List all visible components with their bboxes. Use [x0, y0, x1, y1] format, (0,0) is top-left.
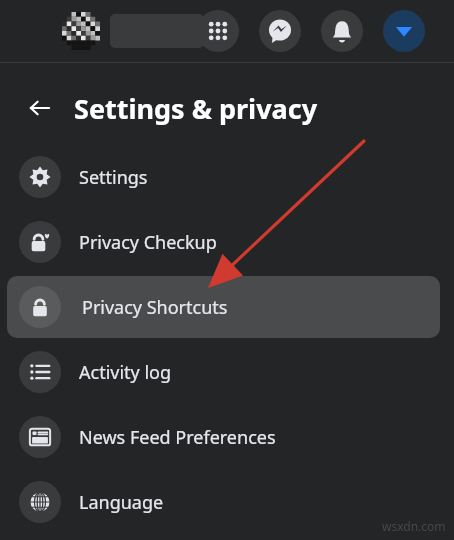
- button[interactable]: Privacy Shortcuts: [7, 276, 440, 338]
- button[interactable]: Menu: [197, 10, 239, 52]
- button[interactable]: Activity log: [0, 341, 454, 403]
- button[interactable]: Back: [22, 90, 58, 126]
- staticText: Activity log: [79, 360, 172, 385]
- staticText: Language: [79, 490, 164, 515]
- button[interactable]: Settings: [0, 146, 454, 208]
- staticText: Privacy Checkup: [79, 230, 217, 255]
- button[interactable]: Privacy Checkup: [0, 211, 454, 273]
- staticText: Settings & privacy: [74, 90, 318, 127]
- staticText: wsxdn.com: [382, 518, 446, 534]
- button[interactable]: Messenger: [259, 10, 301, 52]
- staticText: News Feed Preferences: [79, 425, 276, 450]
- staticText: Privacy Shortcuts: [82, 295, 228, 320]
- staticText: Settings: [79, 165, 148, 190]
- button[interactable]: News Feed Preferences: [0, 406, 454, 468]
- button[interactable]: Notifications: [321, 10, 363, 52]
- button[interactable]: Language: [0, 471, 454, 533]
- button[interactable]: Account: [383, 10, 425, 52]
